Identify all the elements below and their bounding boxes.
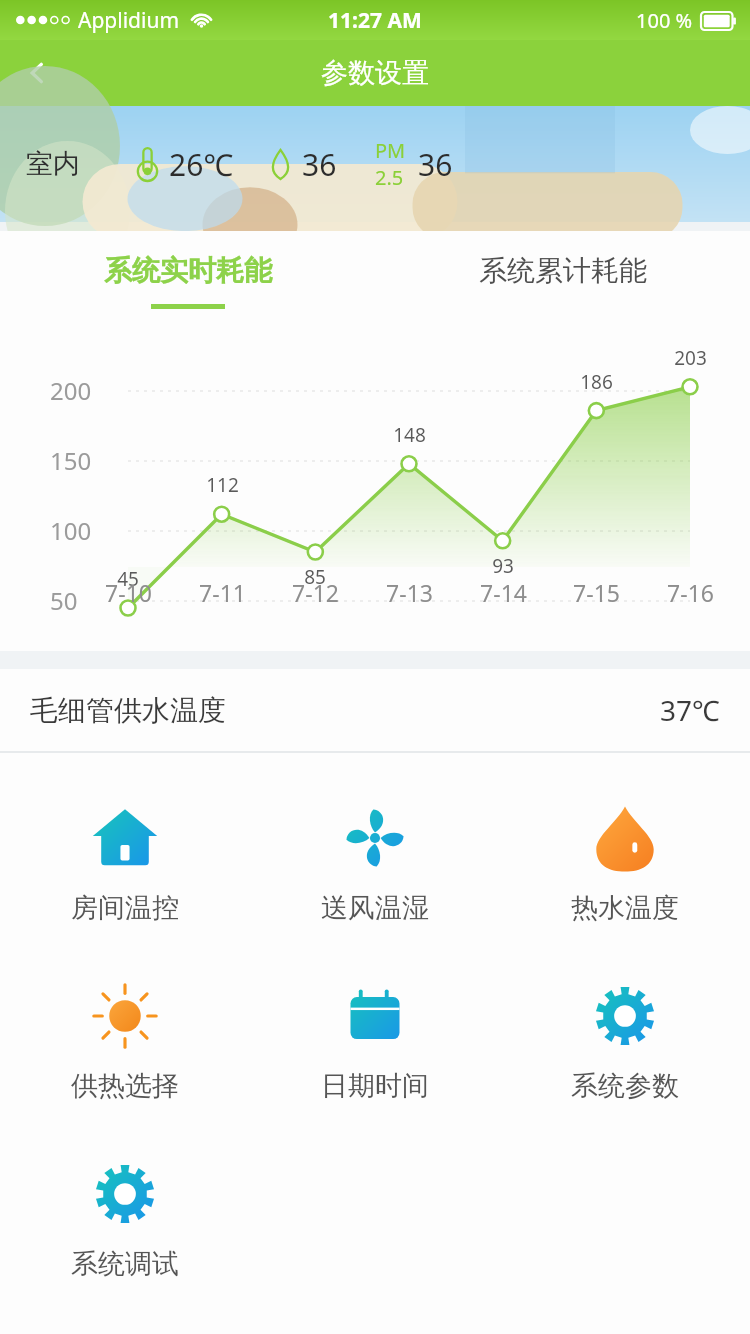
staticText: 热水温度 — [571, 891, 679, 925]
staticText: 7-14 — [480, 577, 527, 608]
staticText: 112 — [206, 472, 239, 498]
staticText: 7-11 — [199, 577, 246, 608]
staticText: 7-13 — [386, 577, 433, 608]
staticText: 203 — [674, 345, 707, 371]
button[interactable]: 房间温控 — [0, 803, 250, 925]
staticText: 150 — [50, 444, 92, 477]
staticText: 房间温控 — [71, 891, 179, 925]
staticText: 毛细管供水温度 — [30, 693, 226, 728]
staticText: 148 — [393, 422, 426, 448]
staticText: 送风温湿 — [321, 891, 429, 925]
button[interactable]: 毛细管供水温度 — [0, 669, 750, 751]
staticText: 系统参数 — [571, 1069, 679, 1103]
staticText: 2.5 — [375, 164, 404, 191]
staticText: 参数设置 — [321, 56, 429, 90]
staticText: 93 — [492, 553, 514, 579]
staticText: 7-10 — [105, 577, 152, 608]
button[interactable]: 系统实时耗能 — [0, 231, 375, 323]
staticText: 100 — [50, 514, 92, 547]
staticText: 日期时间 — [321, 1069, 429, 1103]
staticText: 供热选择 — [71, 1069, 179, 1103]
staticText: PM — [375, 137, 406, 164]
staticText: 36 — [302, 144, 337, 185]
staticText: 7-15 — [573, 577, 620, 608]
button[interactable]: 热水温度 — [500, 803, 750, 925]
staticText: 100 % — [636, 7, 693, 34]
staticText: 200 — [50, 374, 92, 407]
staticText: 45 — [117, 566, 139, 592]
button[interactable]: 系统累计耗能 — [375, 231, 750, 323]
button[interactable]: 系统参数 — [500, 981, 750, 1103]
staticText: 186 — [580, 369, 613, 395]
staticText: 50 — [50, 584, 78, 617]
button[interactable]: 送风温湿 — [250, 803, 500, 925]
button[interactable]: 供热选择 — [0, 981, 250, 1103]
staticText: 7-12 — [292, 577, 339, 608]
staticText: 36 — [418, 144, 453, 185]
staticText: 26℃ — [169, 144, 234, 185]
button[interactable]: 系统调试 — [0, 1159, 250, 1281]
button[interactable]: Back — [0, 40, 74, 106]
staticText: 系统累计耗能 — [479, 253, 647, 288]
button[interactable]: 日期时间 — [250, 981, 500, 1103]
staticText: 85 — [304, 564, 326, 590]
staticText: 系统实时耗能 — [104, 253, 272, 288]
staticText: 37℃ — [660, 691, 720, 729]
staticText: 7-16 — [667, 577, 714, 608]
staticText: 室内 — [26, 147, 80, 181]
staticText: 系统调试 — [71, 1247, 179, 1281]
staticText: 11:27 AM — [328, 6, 422, 35]
staticText: Applidium — [78, 6, 180, 35]
